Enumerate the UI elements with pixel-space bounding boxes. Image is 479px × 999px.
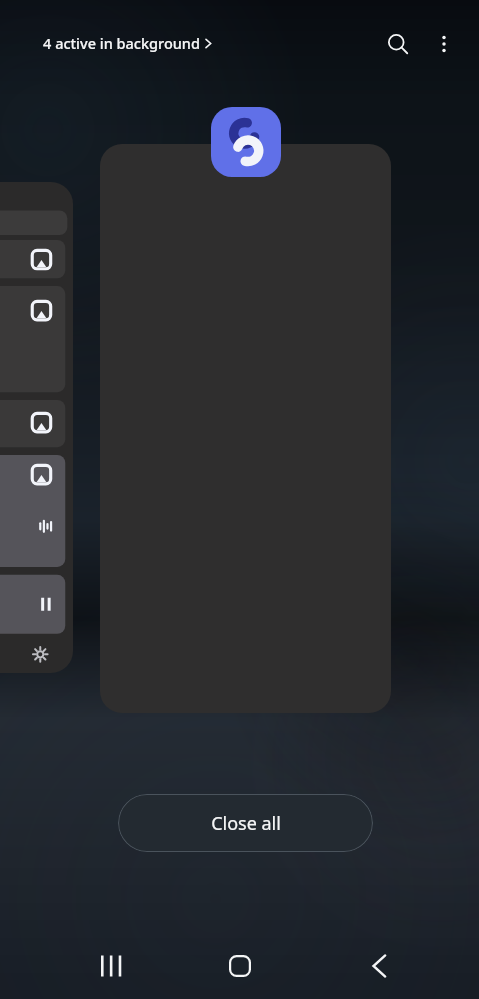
staticText: Close all (211, 811, 281, 836)
button[interactable]: Recents (87, 942, 135, 990)
button[interactable]: Close all (118, 794, 373, 852)
button[interactable]: Smart Switch app icon (211, 107, 281, 177)
staticText: 4 active in background (43, 33, 200, 53)
button[interactable] (0, 182, 73, 673)
button[interactable]: Search (376, 22, 420, 66)
button[interactable]: 4 active in background (36, 28, 220, 58)
button[interactable]: More options (422, 22, 466, 66)
button[interactable]: Home (216, 942, 264, 990)
button[interactable] (100, 144, 391, 713)
button[interactable]: Back (355, 942, 403, 990)
